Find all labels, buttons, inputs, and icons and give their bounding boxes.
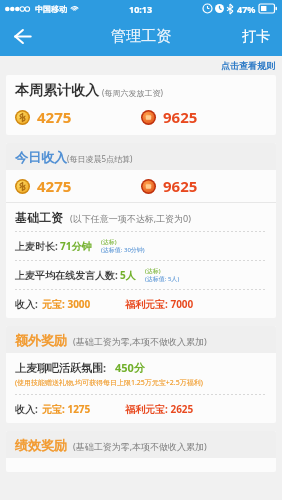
staticText: 中国移动	[35, 4, 67, 14]
button[interactable]: 点击查看规则	[214, 58, 282, 73]
staticText: 福利元宝: 7000	[125, 297, 194, 311]
staticText: 收入:	[15, 297, 38, 311]
staticText: 9625	[163, 176, 198, 196]
staticText: (达标)	[145, 267, 161, 275]
staticText: 基础工资	[15, 210, 63, 225]
staticText: (使用技能赠送礼物,均可获得每日上限1.25万元宝+2.5万福利)	[15, 378, 203, 388]
staticText: 450分	[115, 360, 145, 375]
staticText: (达标)	[101, 238, 117, 246]
staticText: 今日收入	[15, 149, 67, 165]
staticText: 上麦平均在线发言人数:	[15, 268, 118, 282]
staticText: 71分钟	[60, 239, 92, 253]
staticText: (以下任意一项不达标,工资为0)	[70, 212, 191, 224]
staticText: (达标值: 5人)	[145, 275, 180, 283]
button[interactable]: 打卡	[230, 17, 282, 56]
staticText: 额外奖励	[15, 332, 67, 348]
staticText: 元宝: 1275	[42, 402, 91, 416]
staticText: 47%	[237, 3, 256, 15]
staticText: (每周六发放工资)	[102, 87, 163, 98]
staticText: 管理工资	[111, 27, 171, 46]
staticText: (基础工资为零,本项不做收入累加)	[73, 335, 207, 347]
staticText: 元宝: 3000	[42, 297, 91, 311]
staticText: 4275	[37, 176, 72, 196]
staticText: 绩效奖励	[15, 437, 67, 453]
staticText: 点击查看规则	[221, 60, 275, 71]
staticText: 福利元宝: 2625	[125, 402, 194, 416]
button[interactable]: Back	[0, 17, 44, 56]
staticText: 收入:	[15, 402, 38, 416]
staticText: 上麦时长:	[15, 239, 58, 253]
staticText: 9625	[163, 107, 198, 127]
staticText: 4275	[37, 107, 72, 127]
staticText: 上麦聊吧活跃氛围:	[15, 360, 107, 375]
staticText: (达标值: 30分钟)	[101, 246, 145, 254]
staticText: (基础工资为零,本项不做收入累加)	[73, 440, 207, 452]
staticText: 10:13	[129, 3, 153, 15]
staticText: 本周累计收入	[15, 82, 99, 100]
staticText: 5人	[120, 268, 136, 282]
staticText: (每日凌晨5点结算)	[67, 153, 133, 164]
staticText: 打卡	[242, 28, 270, 46]
